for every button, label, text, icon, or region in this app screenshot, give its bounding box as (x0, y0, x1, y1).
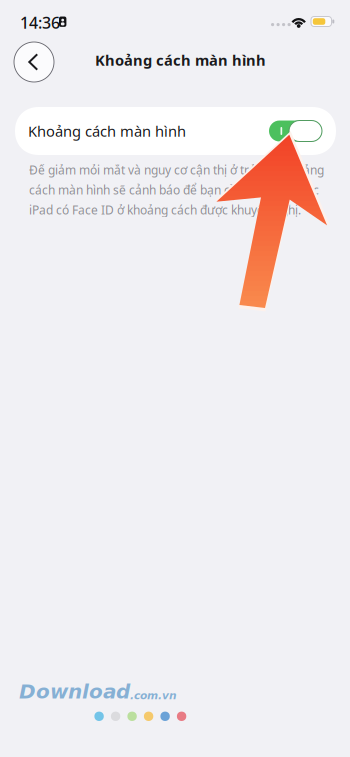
staticText: Để giảm mỏi mắt và nguy cơ cận thị ở trẻ… (29, 162, 324, 178)
button[interactable]: Back (14, 42, 54, 82)
staticText: iPad có Face ID ở khoảng cách được khuyế… (29, 202, 301, 218)
button[interactable]: Khoảng cách màn hình (15, 107, 336, 155)
staticText: Download (19, 680, 130, 703)
staticText: .com.vn (130, 689, 177, 702)
staticText: 14:36 (20, 12, 60, 33)
staticText: Khoảng cách màn hình (95, 50, 266, 70)
staticText: Khoảng cách màn hình (28, 121, 186, 141)
staticText: cách màn hình sẽ cảnh báo để bạn cầm iPh… (29, 182, 319, 198)
